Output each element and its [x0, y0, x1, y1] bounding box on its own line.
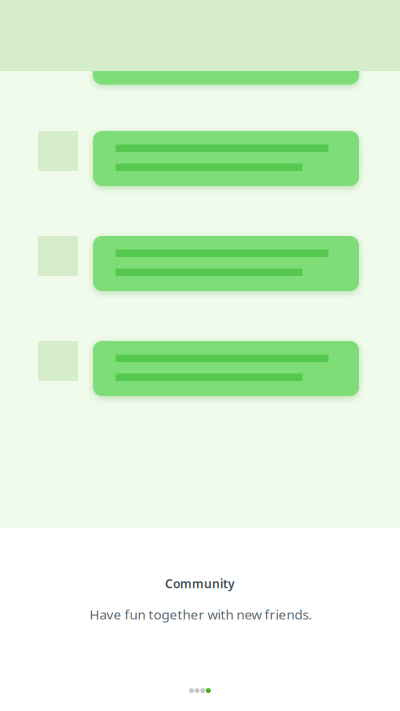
- staticText: Community: [165, 575, 235, 591]
- staticText: Have fun together with new friends.: [89, 605, 312, 623]
- button[interactable]: Post placeholder: [0, 0, 400, 528]
- button[interactable]: Post placeholder: [0, 0, 400, 528]
- button[interactable]: Page 4 of 4: [189, 688, 211, 693]
- button[interactable]: Post placeholder: [0, 0, 400, 528]
- button[interactable]: Post placeholder: [0, 0, 400, 528]
